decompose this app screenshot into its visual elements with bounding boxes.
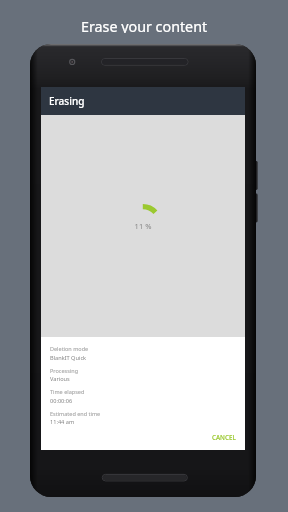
staticText: 00:00:06: [50, 397, 73, 405]
staticText: Time elapsed: [50, 388, 85, 395]
staticText: Erase your content: [81, 17, 208, 33]
staticText: Estimated end time: [50, 410, 101, 417]
staticText: Deletion mode: [50, 345, 89, 352]
staticText: Processing: [50, 367, 79, 374]
staticText: 11 %: [41, 221, 245, 231]
staticText: BlankIT Quick: [50, 354, 87, 362]
staticText: Various: [50, 375, 70, 383]
staticText: CANCEL: [212, 433, 236, 442]
button[interactable]: CANCEL: [206, 428, 242, 447]
staticText: 11:44 am: [50, 418, 75, 426]
staticText: Erasing: [49, 94, 85, 108]
